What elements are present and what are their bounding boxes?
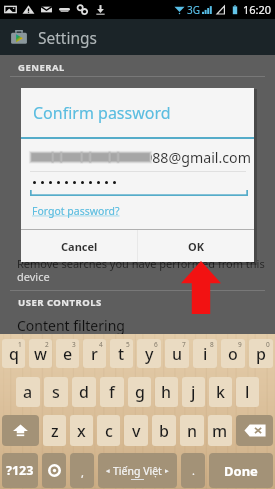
button[interactable]: h xyxy=(155,377,178,407)
staticText: v xyxy=(132,420,141,442)
button[interactable]: x xyxy=(70,415,93,446)
button[interactable]: s xyxy=(44,377,68,407)
button[interactable]: n xyxy=(180,415,204,446)
staticText: Tiếng Việt xyxy=(113,464,162,478)
button[interactable]: g xyxy=(128,377,151,407)
staticText: 5 xyxy=(126,340,130,349)
button[interactable]: ◂ xyxy=(98,453,177,488)
staticText: 9 xyxy=(238,340,242,349)
staticText: x xyxy=(77,420,86,442)
staticText: w xyxy=(34,343,47,365)
button[interactable]: i xyxy=(193,339,217,368)
button[interactable]: ?123 xyxy=(2,453,38,488)
button[interactable]: o xyxy=(221,339,245,368)
staticText: k xyxy=(216,381,225,403)
button[interactable]: p xyxy=(249,339,273,368)
staticText: 3 xyxy=(72,340,76,349)
staticText: f xyxy=(109,381,115,403)
button[interactable]: b xyxy=(152,415,176,446)
button[interactable]: , xyxy=(70,453,94,488)
staticText: t xyxy=(118,343,125,365)
staticText: hoang.anh.hao.1988@gmail.com xyxy=(31,148,251,167)
button[interactable]: e xyxy=(56,339,79,368)
staticText: ?123 xyxy=(6,462,34,479)
button[interactable]: Play Store xyxy=(8,26,30,48)
staticText: , xyxy=(81,465,84,480)
staticText: 8 xyxy=(210,340,214,349)
button[interactable]: Done xyxy=(209,453,273,488)
button[interactable]: c xyxy=(97,415,120,446)
staticText: a xyxy=(23,381,33,403)
staticText: USER CONTROLS xyxy=(18,296,102,309)
staticText: b xyxy=(159,420,169,442)
button[interactable]: u xyxy=(165,339,189,368)
staticText: 7 xyxy=(182,340,186,349)
button[interactable]: y xyxy=(137,339,161,368)
staticText: Cancel xyxy=(61,239,98,254)
staticText: q xyxy=(9,343,19,365)
staticText: GENERAL xyxy=(18,61,65,74)
staticText: 6 xyxy=(154,340,158,349)
staticText: j xyxy=(191,381,196,403)
staticText: Done xyxy=(224,462,258,480)
button[interactable]: . xyxy=(181,453,205,488)
staticText: Confirm password xyxy=(33,102,171,124)
button[interactable]: Forgot password? xyxy=(32,204,120,218)
button[interactable]: m xyxy=(208,415,232,446)
staticText: 3G xyxy=(187,3,200,17)
button[interactable]: Keyboard settings xyxy=(42,453,66,488)
staticText: 0 xyxy=(266,340,270,349)
staticText: y xyxy=(145,343,154,365)
staticText: Content filtering xyxy=(17,316,125,335)
staticText: l xyxy=(245,381,250,403)
staticText: g xyxy=(135,381,145,403)
staticText: r xyxy=(91,343,98,365)
staticText: Settings xyxy=(38,27,97,48)
button[interactable]: Delete xyxy=(236,415,273,446)
staticText: n xyxy=(187,420,198,442)
staticText: u xyxy=(172,343,183,365)
staticText: ◂ xyxy=(106,467,110,475)
button[interactable]: l xyxy=(236,377,259,407)
button[interactable]: r xyxy=(83,339,106,368)
button[interactable]: q xyxy=(2,339,25,368)
button[interactable]: Shift xyxy=(2,415,39,446)
staticText: 16:20 xyxy=(243,2,272,17)
button[interactable]: k xyxy=(209,377,232,407)
button[interactable]: f xyxy=(100,377,124,407)
staticText: s xyxy=(52,381,60,403)
staticText: z xyxy=(51,420,59,442)
button[interactable]: t xyxy=(110,339,133,368)
button[interactable]: OK xyxy=(138,230,254,262)
button[interactable]: w xyxy=(29,339,52,368)
button[interactable]: j xyxy=(182,377,205,407)
staticText: d xyxy=(79,381,89,403)
staticText: OK xyxy=(188,239,205,254)
staticText: o xyxy=(228,343,238,365)
staticText: c xyxy=(105,420,113,442)
button[interactable]: d xyxy=(72,377,96,407)
button[interactable]: a xyxy=(16,377,40,407)
staticText: m xyxy=(212,420,228,442)
staticText: Remove searches you have performed from … xyxy=(17,256,265,271)
button[interactable]: v xyxy=(124,415,148,446)
staticText: h xyxy=(161,381,172,403)
button[interactable]: Cancel xyxy=(21,230,137,262)
staticText: device xyxy=(17,269,50,284)
staticText: 1 xyxy=(18,340,22,349)
staticText: 2 xyxy=(45,340,49,349)
staticText: i xyxy=(203,343,208,365)
staticText: . xyxy=(192,463,195,478)
staticText: 4 xyxy=(99,340,103,349)
staticText: p xyxy=(256,343,266,365)
staticText: e xyxy=(63,343,73,365)
staticText: ▸ xyxy=(165,467,169,475)
button[interactable]: z xyxy=(43,415,66,446)
